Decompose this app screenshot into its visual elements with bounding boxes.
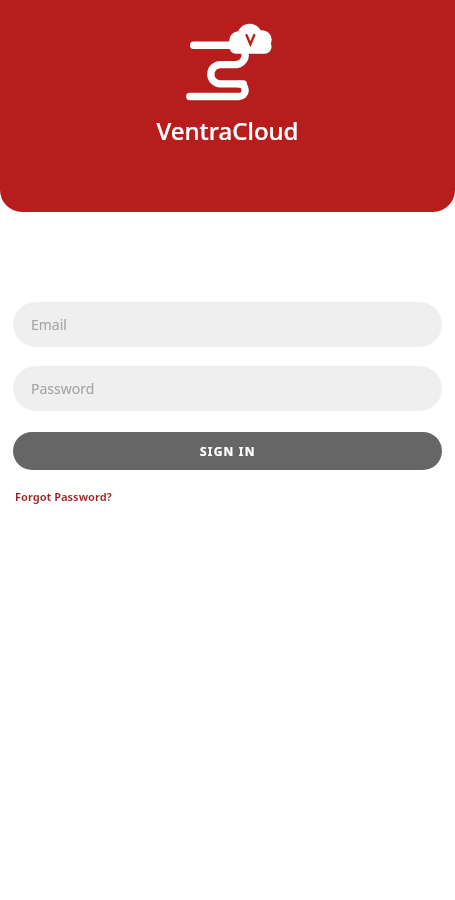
button[interactable]: SIGN IN <box>13 432 442 470</box>
staticText: Email <box>31 315 67 334</box>
button[interactable]: Password <box>13 366 442 411</box>
staticText: SIGN IN <box>200 443 256 459</box>
button[interactable]: Forgot Password? <box>13 486 114 507</box>
staticText: VentraCloud <box>156 114 299 147</box>
staticText: Password <box>31 379 95 398</box>
button[interactable]: Email <box>13 302 442 347</box>
other: VentraCloud logo <box>185 26 271 108</box>
staticText: Forgot Password? <box>15 489 112 504</box>
